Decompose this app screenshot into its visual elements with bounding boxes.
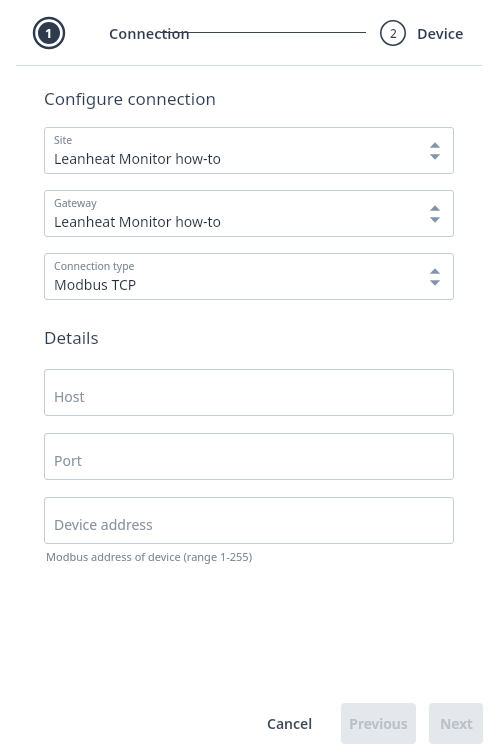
button[interactable]: Cancel [251, 703, 329, 744]
staticText: Leanheat Monitor how-to [54, 212, 222, 231]
staticText: Cancel [267, 714, 313, 733]
button[interactable]: Device address [44, 497, 454, 544]
button[interactable]: Previous [341, 703, 416, 744]
staticText: Connection [109, 23, 190, 43]
staticText: Configure connection [44, 87, 216, 110]
button[interactable]: Site [44, 127, 454, 174]
button[interactable]: Host [44, 369, 454, 416]
staticText: Host [54, 387, 85, 406]
button[interactable]: Gateway [44, 190, 454, 237]
button[interactable]: 1 [33, 17, 190, 49]
button[interactable]: Next [429, 703, 483, 744]
button[interactable]: Port [44, 433, 454, 480]
staticText: Gateway [54, 196, 97, 210]
staticText: Connection type [54, 259, 135, 273]
staticText: Site [54, 133, 73, 147]
staticText: Device [417, 23, 464, 43]
staticText: Port [54, 451, 82, 470]
button[interactable]: Connection type [44, 253, 454, 300]
staticText: 1 [45, 24, 53, 42]
staticText: Details [44, 326, 99, 349]
staticText: Next [440, 714, 473, 733]
staticText: Modbus address of device (range 1-255) [46, 549, 252, 564]
staticText: Leanheat Monitor how-to [54, 149, 222, 168]
button[interactable]: 2 [380, 20, 464, 46]
staticText: Previous [349, 714, 408, 733]
staticText: 2 [390, 25, 397, 41]
staticText: Device address [54, 515, 153, 534]
staticText: Modbus TCP [54, 275, 137, 294]
